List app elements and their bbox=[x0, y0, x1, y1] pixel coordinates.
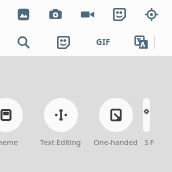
staticText: Theme bbox=[0, 137, 18, 147]
button[interactable]: Gallery bbox=[10, 1, 36, 27]
button[interactable]: One-handed bbox=[88, 98, 143, 147]
button[interactable]: Translate bbox=[128, 29, 154, 55]
button[interactable]: GIF bbox=[90, 29, 116, 55]
button[interactable]: Stickers bbox=[106, 1, 132, 27]
button[interactable]: Theme bbox=[0, 98, 33, 147]
button[interactable]: Search bbox=[10, 29, 36, 55]
button[interactable]: Location bbox=[138, 1, 164, 27]
staticText: One-handed bbox=[93, 137, 138, 147]
staticText: Settings bbox=[143, 137, 150, 147]
staticText: Text Editing bbox=[40, 137, 81, 147]
button[interactable]: Settings bbox=[143, 98, 150, 147]
staticText: GIF bbox=[96, 36, 111, 48]
button[interactable]: Camera bbox=[42, 1, 68, 27]
button[interactable]: Sticker bbox=[50, 29, 76, 55]
button[interactable]: Video bbox=[74, 1, 100, 27]
button[interactable]: Text Editing bbox=[33, 98, 88, 147]
